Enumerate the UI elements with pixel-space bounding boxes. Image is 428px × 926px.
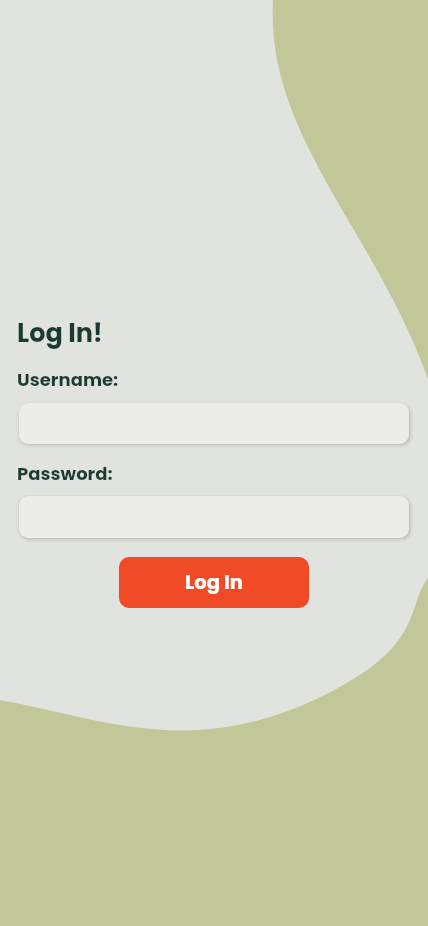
staticText: Username: bbox=[17, 367, 119, 392]
staticText: Log In bbox=[185, 569, 243, 596]
staticText: Log In! bbox=[17, 315, 103, 351]
button[interactable]: Log In bbox=[119, 557, 309, 608]
staticText: Password: bbox=[17, 461, 113, 486]
